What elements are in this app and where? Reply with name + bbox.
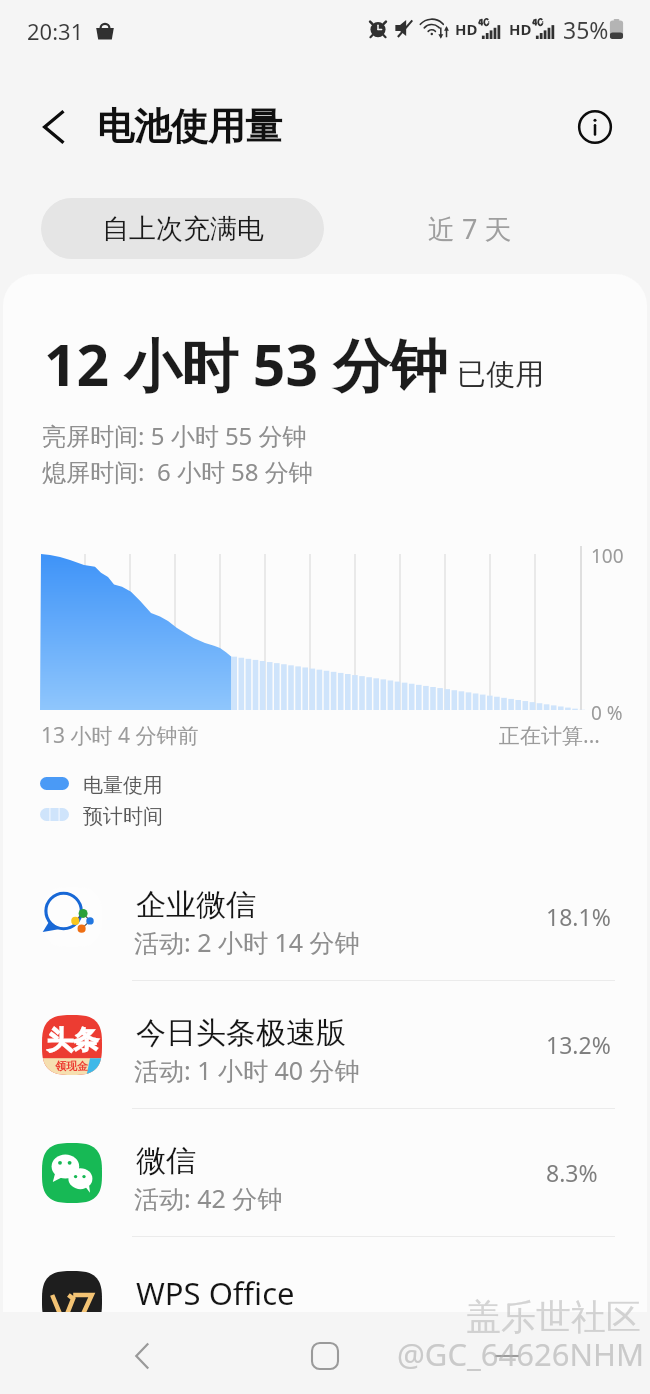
button[interactable]: 近 7 天 xyxy=(380,198,560,259)
staticText: 近 7 天 xyxy=(428,210,512,247)
button[interactable]: Back xyxy=(30,104,76,150)
staticText: 预计时间 xyxy=(83,804,163,829)
staticText: 12 小时 53 分钟 xyxy=(44,325,447,403)
staticText: 35% xyxy=(563,14,609,45)
staticText: 企业微信 xyxy=(136,886,256,924)
button[interactable]: Recents xyxy=(477,1326,537,1386)
staticText: 电量使用 xyxy=(83,773,163,798)
staticText: 已使用 xyxy=(457,356,544,393)
staticText: 亮屏时间: 5 小时 55 分钟 xyxy=(42,419,307,452)
staticText: 13 小时 4 分钟前 xyxy=(41,721,199,750)
staticText: @GC_64626NHM xyxy=(397,1333,645,1375)
staticText: 正在计算... xyxy=(499,721,600,750)
button[interactable]: Home xyxy=(295,1326,355,1386)
button[interactable]: 头条 xyxy=(0,981,650,1109)
staticText: 8.3% xyxy=(546,1157,598,1188)
staticText: 今日头条极速版 xyxy=(136,1014,346,1052)
staticText: HD xyxy=(455,19,478,39)
staticText: 活动: 2 小时 14 分钟 xyxy=(134,925,360,959)
staticText: 100 xyxy=(591,543,624,569)
staticText: 18.1% xyxy=(546,901,611,932)
staticText: 头条 xyxy=(47,1024,99,1057)
button[interactable]: WPS Office xyxy=(0,1245,650,1312)
staticText: HD xyxy=(509,19,532,39)
staticText: 20:31 xyxy=(27,16,84,46)
button[interactable]: Information xyxy=(572,104,618,150)
staticText: 活动: 42 分钟 xyxy=(134,1181,283,1215)
staticText: WPS Office xyxy=(136,1272,295,1312)
staticText: 熄屏时间: 6 小时 58 分钟 xyxy=(42,455,313,488)
staticText: 领现金 xyxy=(55,1059,88,1073)
staticText: 13.2% xyxy=(546,1029,611,1060)
staticText: 微信 xyxy=(136,1142,196,1180)
button[interactable]: Back xyxy=(113,1326,173,1386)
staticText: 自上次充满电 xyxy=(102,212,264,246)
button[interactable]: 自上次充满电 xyxy=(41,198,324,259)
button[interactable]: 企业微信 xyxy=(0,853,650,981)
staticText: 0 % xyxy=(591,700,623,726)
staticText: 盖乐世社区 xyxy=(466,1295,641,1339)
button[interactable]: 微信 xyxy=(0,1109,650,1237)
staticText: 电池使用量 xyxy=(97,103,282,150)
staticText: 活动: 1 小时 40 分钟 xyxy=(134,1053,360,1087)
